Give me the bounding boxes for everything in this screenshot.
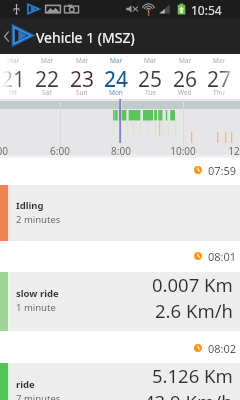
staticText: Vehicle 1 (MSZ) <box>36 28 135 47</box>
staticText: 07:59 <box>208 163 237 177</box>
staticText: Thu <box>213 88 225 97</box>
button[interactable]: Mar <box>30 54 64 99</box>
staticText: 6:00 <box>44 144 76 158</box>
staticText: Sun <box>76 88 88 97</box>
staticText: Wed <box>178 88 192 97</box>
staticText: 12:00 <box>225 144 240 158</box>
staticText: 8:00 <box>105 144 137 158</box>
staticText: 27 <box>207 65 232 94</box>
staticText: Tue <box>145 88 156 97</box>
staticText: 2.6 Km/h <box>155 298 233 323</box>
staticText: 21 <box>1 65 26 94</box>
button[interactable]: Mar <box>168 54 202 99</box>
staticText: 10:00 <box>167 144 199 158</box>
button[interactable]: Mar <box>99 54 133 99</box>
staticText: 7 minutes <box>16 392 61 400</box>
staticText: 5.126 Km <box>152 363 233 388</box>
staticText: 25 <box>138 65 163 94</box>
button[interactable]: Mar <box>0 54 30 99</box>
button[interactable]: slow ride <box>0 272 240 331</box>
staticText: 26 <box>173 65 198 94</box>
button[interactable]: ride <box>0 363 240 400</box>
other: Back <box>2 30 11 43</box>
staticText: Idling <box>16 199 44 212</box>
staticText: Fri <box>9 88 17 97</box>
staticText: 23 <box>70 65 95 94</box>
staticText: Mar <box>179 56 192 65</box>
button[interactable]: Back <box>0 18 240 54</box>
button[interactable]: Mar <box>202 54 236 99</box>
staticText: Mar <box>41 56 54 65</box>
staticText: 22 <box>35 65 60 94</box>
staticText: Mar <box>213 56 226 65</box>
staticText: 08:02 <box>208 341 237 355</box>
staticText: Sat <box>42 88 52 97</box>
staticText: 08:01 <box>208 249 237 263</box>
staticText: 43.9 Km/h <box>144 389 233 400</box>
staticText: Mar <box>7 56 20 65</box>
staticText: Mar <box>76 56 89 65</box>
staticText: slow ride <box>16 287 59 300</box>
staticText: 10:54 <box>191 2 222 18</box>
staticText: 2 minutes <box>16 213 61 226</box>
staticText: 4:00 <box>0 144 14 158</box>
staticText: 24 <box>104 65 129 94</box>
staticText: 0.007 Km <box>152 272 233 297</box>
button[interactable]: Mar <box>133 54 167 99</box>
button[interactable]: Mar <box>65 54 99 99</box>
staticText: ride <box>16 378 35 391</box>
staticText: Mar <box>110 56 123 65</box>
staticText: Mar <box>144 56 157 65</box>
staticText: Mon <box>109 88 123 97</box>
staticText: 1 minute <box>16 301 56 314</box>
button[interactable]: Idling <box>0 185 240 241</box>
